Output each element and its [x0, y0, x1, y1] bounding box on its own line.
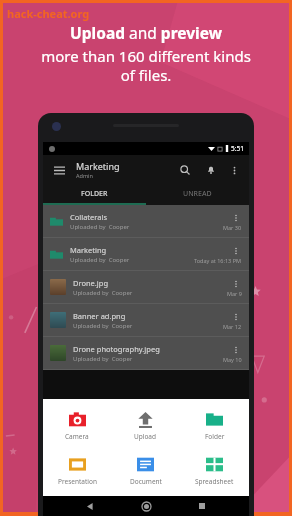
button[interactable]: Drone.jpg	[43, 271, 249, 303]
button[interactable]: Item options	[230, 245, 242, 257]
staticText: 5:51	[231, 144, 244, 153]
button[interactable]: Menu	[50, 161, 68, 179]
button[interactable]: Search	[176, 161, 194, 179]
button[interactable]: Banner ad.png	[43, 304, 249, 336]
staticText: Admin	[76, 172, 93, 179]
button[interactable]: Item options	[230, 212, 242, 224]
button[interactable]: Upload	[111, 408, 180, 444]
button[interactable]: Item options	[230, 311, 242, 323]
staticText: Mar 30	[223, 224, 242, 231]
button[interactable]: Home	[137, 497, 155, 515]
staticText: UNREAD	[183, 189, 212, 199]
staticText: more than 160 different kinds of files.	[14, 46, 278, 85]
button[interactable]: Drone photography.jpeg	[43, 337, 249, 369]
button[interactable]: Presentation	[43, 453, 111, 489]
staticText: Uploaded by Cooper	[70, 223, 130, 231]
staticText: Document	[130, 477, 162, 486]
button[interactable]: Folder	[180, 408, 249, 444]
staticText: Drone photography.jpeg	[73, 344, 160, 354]
button[interactable]: Item options	[230, 278, 242, 290]
staticText: Marketing	[76, 160, 120, 172]
staticText: Camera	[65, 432, 89, 441]
button[interactable]: Camera	[43, 408, 111, 444]
staticText: Uploaded by Cooper	[70, 256, 130, 264]
staticText: Mar 9	[227, 290, 242, 297]
button[interactable]: Notifications	[202, 161, 220, 179]
staticText: Upload and preview	[70, 22, 222, 43]
staticText: FOLDER	[81, 189, 108, 199]
staticText: Uploaded by Cooper	[73, 355, 133, 363]
staticText: hack-cheat.org	[7, 6, 90, 21]
staticText: Banner ad.png	[73, 311, 126, 321]
staticText: Folder	[205, 432, 225, 441]
button[interactable]: Document	[111, 453, 180, 489]
button[interactable]: UNREAD	[146, 184, 249, 203]
staticText: Upload	[134, 432, 157, 441]
button[interactable]: Marketing	[43, 238, 249, 270]
staticText: Uploaded by Cooper	[73, 289, 133, 297]
staticText: Mar 12	[223, 323, 242, 330]
button[interactable]: Spreadsheet	[180, 453, 249, 489]
staticText: Spreadsheet	[195, 477, 234, 486]
staticText: Today at 16:13 PM	[194, 257, 242, 264]
staticText: Collaterals	[70, 212, 107, 222]
button[interactable]: Collaterals	[43, 205, 249, 237]
staticText: Presentation	[58, 477, 97, 486]
staticText: Marketing	[70, 245, 107, 255]
button[interactable]: Recents	[193, 497, 211, 515]
button[interactable]: Item options	[230, 344, 242, 356]
button[interactable]: FOLDER	[43, 184, 146, 203]
staticText: Drone.jpg	[73, 278, 108, 288]
button[interactable]: More options	[226, 162, 242, 178]
button[interactable]: Back	[81, 497, 99, 515]
staticText: May 10	[223, 356, 242, 363]
staticText: Uploaded by Cooper	[73, 322, 133, 330]
